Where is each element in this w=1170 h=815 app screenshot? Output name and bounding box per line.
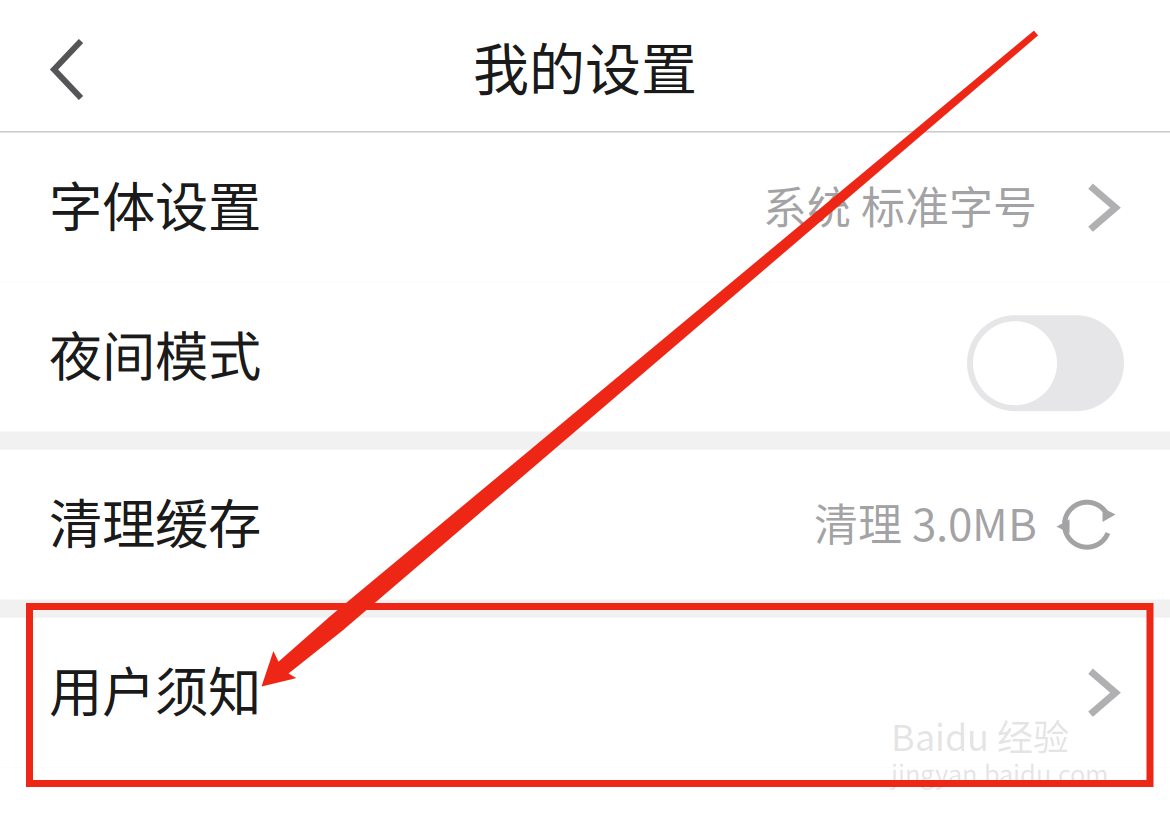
staticText: 清理缓存 bbox=[49, 482, 261, 559]
staticText: 用户须知 bbox=[49, 650, 261, 727]
staticText: 字体设置 bbox=[49, 165, 261, 242]
button[interactable]: Back bbox=[0, 0, 140, 131]
button[interactable]: 用户须知 bbox=[0, 618, 1170, 768]
staticText: 系统 标准字号 bbox=[763, 173, 1037, 236]
button[interactable]: 清理缓存 bbox=[0, 450, 1170, 600]
staticText: 夜间模式 bbox=[49, 315, 261, 392]
button[interactable]: 字体设置 bbox=[0, 133, 1170, 283]
staticText: 清理 3.0MB bbox=[814, 490, 1037, 553]
staticText: jingyan.baidu.com bbox=[891, 754, 1108, 791]
staticText: 我的设置 bbox=[473, 25, 697, 106]
staticText: Baidu 经验 bbox=[891, 709, 1069, 761]
button[interactable]: 夜间模式 bbox=[0, 283, 1170, 432]
